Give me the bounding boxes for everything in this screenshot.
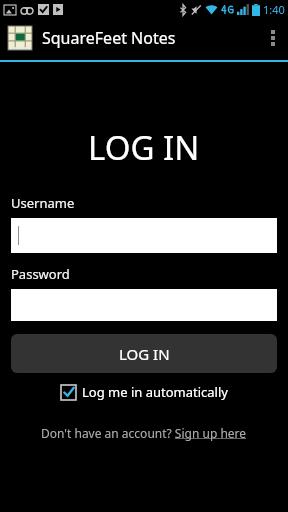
staticText: LOG IN	[88, 125, 200, 170]
staticText: Password	[11, 265, 70, 283]
button[interactable]	[11, 218, 277, 253]
staticText: Log me in automatically	[82, 383, 228, 401]
staticText: LOG IN	[119, 344, 170, 364]
staticText: SquareFeet Notes	[42, 27, 176, 49]
button[interactable]: More options	[258, 18, 288, 58]
staticText: 1:40	[263, 2, 285, 17]
button[interactable]: Log me in automatically	[61, 383, 228, 401]
staticText: Don't have an account? Sign up here	[41, 425, 247, 441]
button[interactable]: Don't have an account? Sign up here	[41, 425, 247, 441]
staticText: Username	[11, 194, 75, 212]
button[interactable]: LOG IN	[11, 334, 277, 373]
